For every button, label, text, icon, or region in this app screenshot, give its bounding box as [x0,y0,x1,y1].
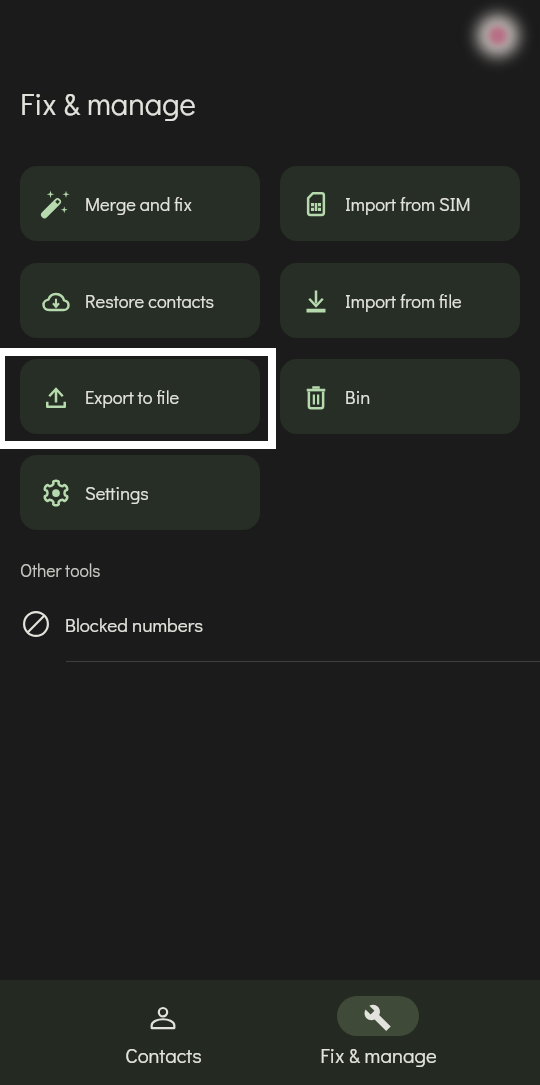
button[interactable]: Settings [20,455,260,530]
staticText: Fix & manage [320,1042,437,1069]
button[interactable]: Merge and fix [20,166,260,241]
button[interactable]: Restore contacts [20,263,260,338]
staticText: Other tools [20,559,101,582]
button[interactable]: Export to file [20,359,260,434]
button[interactable]: Import from SIM [280,166,520,241]
staticText: Restore contacts [85,289,214,313]
staticText: Export to file [85,385,180,409]
staticText: Merge and fix [85,192,193,216]
staticText: Bin [345,385,371,409]
staticText: Blocked numbers [65,612,203,637]
button[interactable]: Contacts [56,980,270,1085]
button[interactable]: Fix & manage [271,980,485,1085]
staticText: Fix & manage [20,83,196,124]
button[interactable]: Blocked numbers [0,598,540,650]
staticText: Contacts [125,1042,202,1069]
button[interactable]: Bin [280,359,520,434]
staticText: Settings [85,481,149,505]
staticText: Import from SIM [345,192,471,216]
button[interactable]: Account [462,0,534,72]
button[interactable]: Import from file [280,263,520,338]
staticText: Import from file [345,289,462,313]
